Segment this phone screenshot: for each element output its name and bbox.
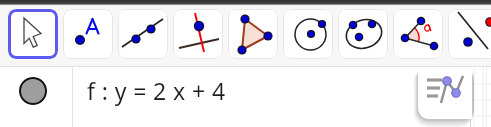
- button[interactable]: Perpendicular Line: [173, 9, 223, 59]
- button[interactable]: Point: [63, 9, 113, 59]
- button[interactable]: Reflect about Line: [448, 9, 491, 59]
- button[interactable]: f : y = 2 x + 4: [87, 75, 226, 106]
- button[interactable]: Ellipse: [338, 9, 388, 59]
- button[interactable]: Toggle visibility of f: [19, 77, 47, 105]
- button[interactable]: Polygon: [228, 9, 278, 59]
- button[interactable]: Switch to graphics view: [418, 67, 472, 119]
- button[interactable]: Circle with Centre through Point: [283, 9, 333, 59]
- button[interactable]: Line: [118, 9, 168, 59]
- button[interactable]: Angle: [393, 9, 443, 59]
- staticText: f : y = 2 x + 4: [87, 75, 226, 106]
- button[interactable]: Move: [8, 9, 58, 59]
